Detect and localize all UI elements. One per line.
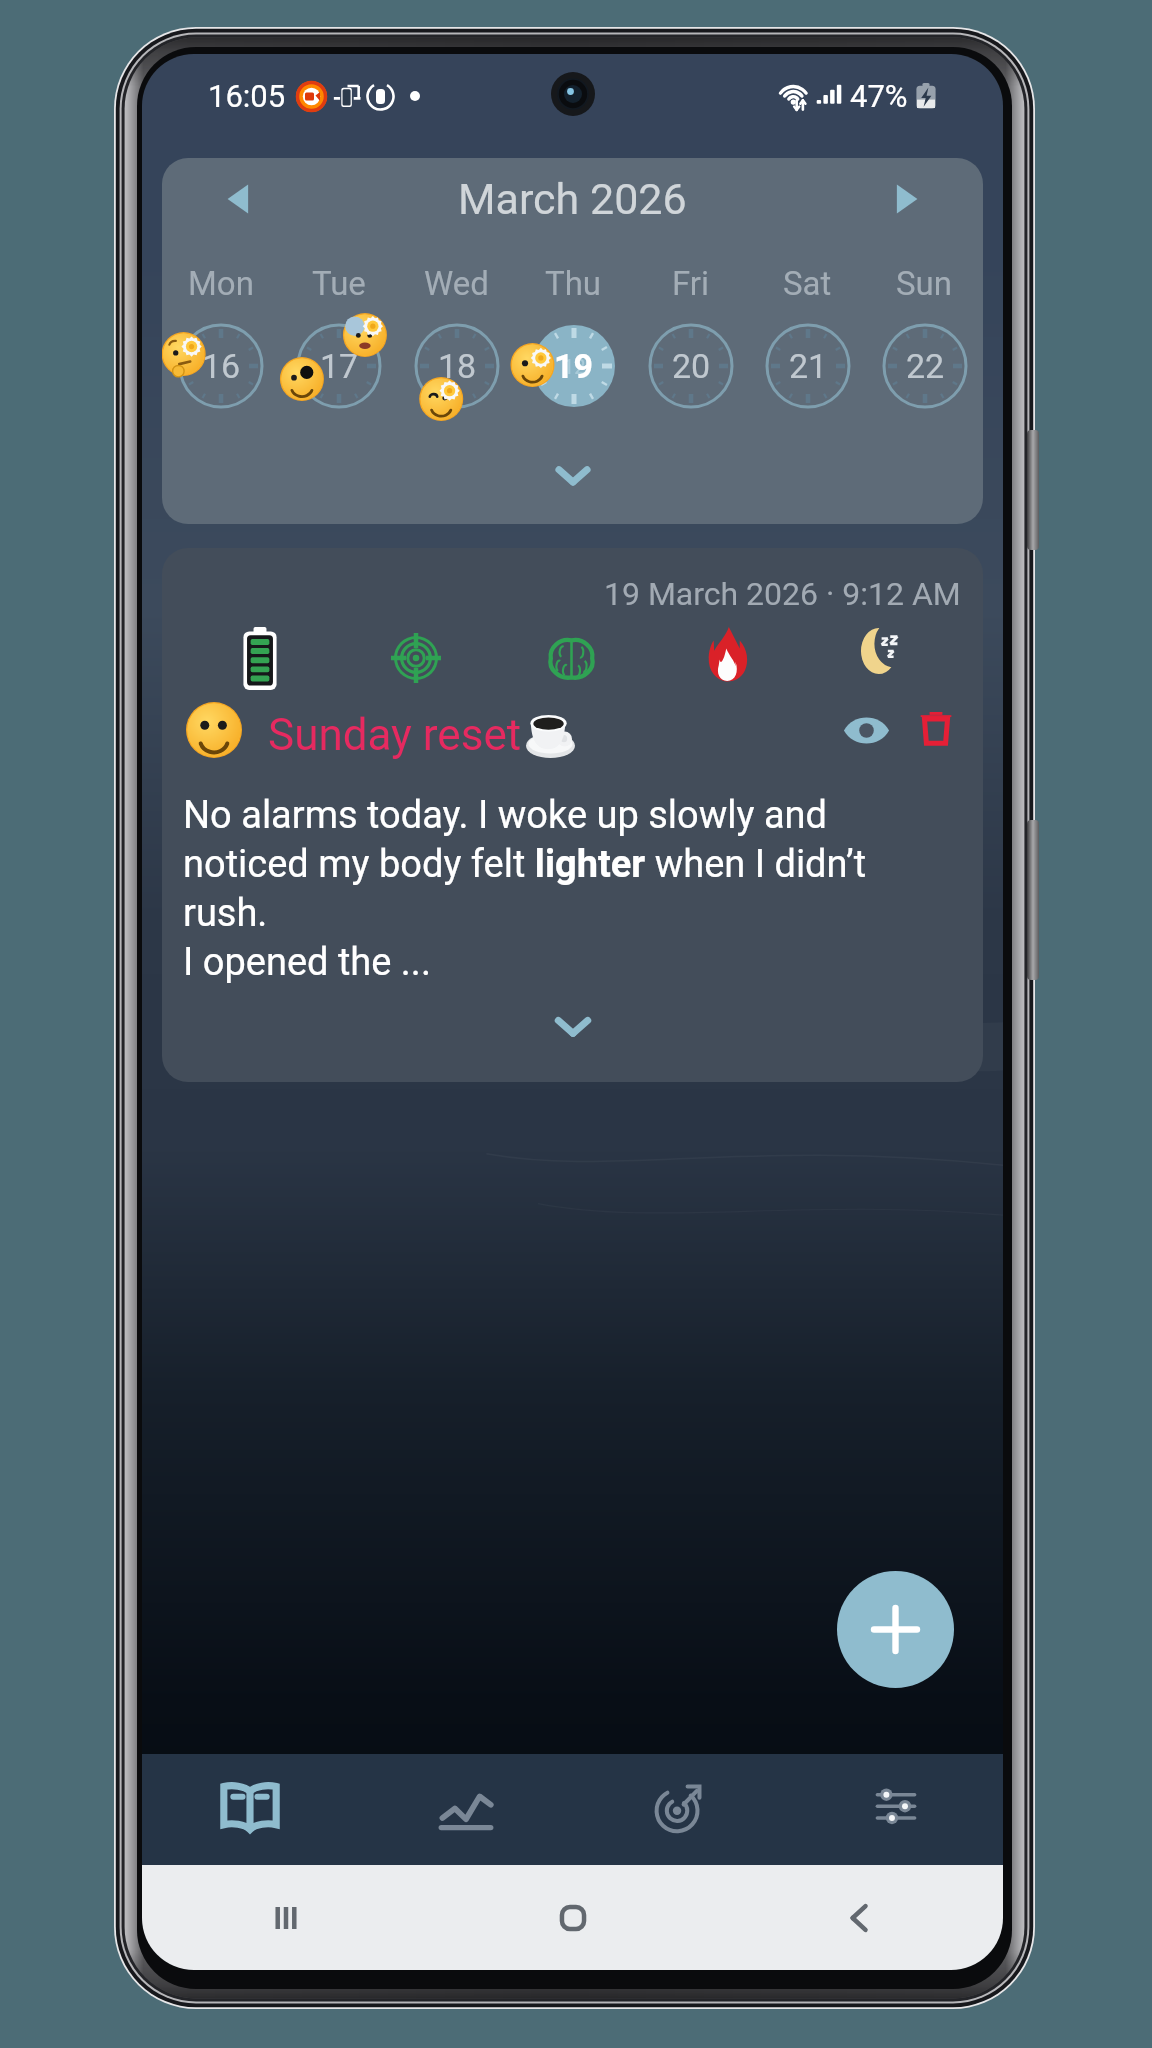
staticText: 21: [789, 346, 828, 386]
button[interactable]: Next month: [875, 168, 937, 230]
button[interactable]: Back: [716, 1865, 1003, 1970]
button[interactable]: Add entry: [837, 1571, 954, 1688]
staticText: Sat: [783, 264, 832, 303]
staticText: 22: [906, 346, 945, 386]
button[interactable]: 22: [866, 313, 983, 419]
staticText: Mon: [188, 264, 254, 303]
staticText: 19 March 2026 · 9:12 AM: [604, 575, 961, 613]
staticText: 12: [563, 355, 586, 378]
staticText: 16:05: [208, 78, 286, 114]
button[interactable]: Previous month: [208, 168, 270, 230]
staticText: No alarms today. I woke up slowly and no…: [183, 793, 867, 984]
staticText: Tue: [312, 264, 366, 303]
button[interactable]: Settings: [788, 1754, 1003, 1865]
button[interactable]: Delete entry: [902, 694, 969, 761]
staticText: Thu: [545, 264, 602, 303]
staticText: 16: [202, 346, 241, 386]
staticText: Sun: [896, 264, 953, 303]
button[interactable]: Trends: [358, 1754, 573, 1865]
button[interactable]: 17: [280, 313, 398, 419]
button[interactable]: 20: [632, 313, 749, 419]
button[interactable]: 16: [162, 313, 280, 419]
staticText: Sunday reset: [268, 709, 522, 761]
staticText: 20: [672, 346, 711, 386]
staticText: Fri: [672, 264, 710, 303]
staticText: 47%: [850, 78, 908, 114]
staticText: Wed: [424, 264, 489, 303]
button[interactable]: Home: [429, 1865, 716, 1970]
staticText: March 2026: [458, 174, 687, 224]
staticText: 18: [438, 346, 477, 386]
button[interactable]: Expand calendar: [162, 446, 983, 504]
button[interactable]: 12: [515, 313, 632, 419]
button[interactable]: Goals: [573, 1754, 788, 1865]
button[interactable]: Journal: [142, 1754, 358, 1865]
button[interactable]: Recents: [142, 1865, 429, 1970]
button[interactable]: Expand entry: [521, 1000, 625, 1052]
button[interactable]: 18: [398, 313, 515, 419]
staticText: 17: [320, 346, 359, 386]
button[interactable]: 21: [749, 313, 866, 419]
staticText: 19: [554, 346, 594, 386]
button[interactable]: View entry: [830, 694, 902, 766]
